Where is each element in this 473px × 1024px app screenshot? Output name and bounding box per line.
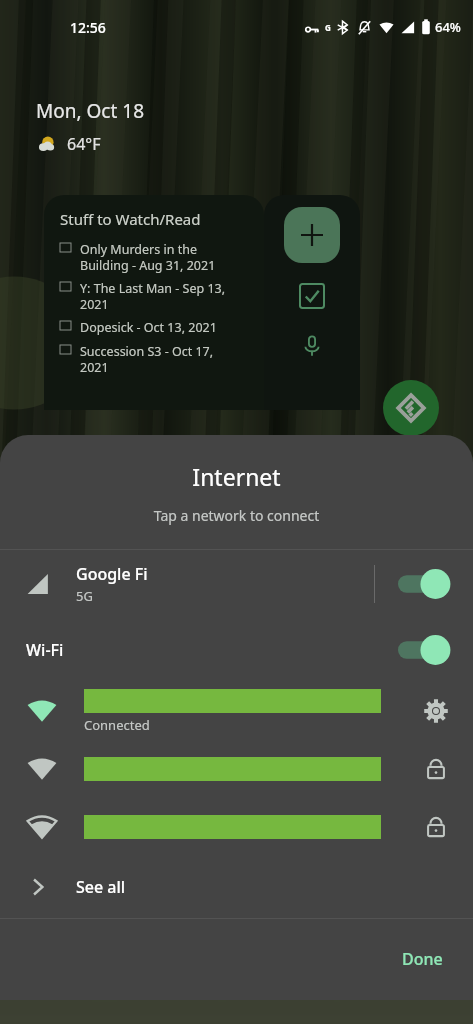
staticText: Google Fi — [76, 563, 148, 585]
staticText: Mon, Oct 18 — [36, 98, 144, 124]
button[interactable]: Stuff to Watch/Read — [44, 195, 264, 410]
staticText: Only Murders in the Building - Aug 31, 2… — [80, 241, 216, 273]
button[interactable]: Voice note — [295, 329, 329, 363]
staticText: Internet — [0, 461, 473, 492]
staticText: 5G — [76, 587, 93, 605]
staticText: Dopesick - Oct 13, 2021 — [80, 319, 217, 336]
button[interactable]: Connected — [0, 682, 473, 740]
button[interactable]: Add note — [284, 207, 340, 263]
staticText: 64% — [435, 18, 461, 36]
staticText: Wi-Fi — [26, 639, 64, 661]
staticText: 12:56 — [70, 18, 106, 37]
staticText: Tap a network to connect — [0, 506, 473, 525]
button[interactable]: Secured network — [0, 798, 473, 856]
staticText: See all — [76, 876, 126, 898]
staticText: G — [325, 22, 331, 33]
button[interactable]: See all — [0, 856, 473, 918]
staticText: Connected — [84, 716, 150, 734]
staticText: Done — [402, 948, 443, 970]
button[interactable]: Secured network — [0, 740, 473, 798]
button[interactable]: Secured network — [399, 798, 473, 856]
staticText: Stuff to Watch/Read — [60, 209, 201, 229]
staticText: 64°F — [67, 133, 101, 155]
button[interactable]: Secured network — [399, 740, 473, 798]
button[interactable]: Google Fi — [0, 550, 473, 618]
button[interactable]: Done — [384, 940, 461, 978]
button[interactable]: Toggle on — [398, 635, 450, 665]
button[interactable]: Wi-Fi — [0, 618, 473, 682]
button[interactable]: Feedly — [383, 380, 439, 436]
button[interactable]: Toggle on — [398, 569, 450, 599]
button[interactable]: Network settings — [399, 682, 473, 740]
staticText: Y: The Last Man - Sep 13, 2021 — [80, 280, 226, 312]
staticText: Succession S3 - Oct 17, 2021 — [80, 343, 214, 375]
button[interactable]: New list — [295, 279, 329, 313]
